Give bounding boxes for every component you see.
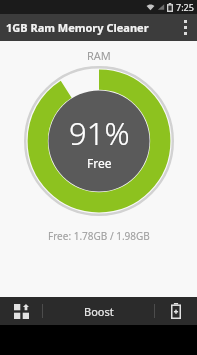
staticText: Free: 1.78GB / 1.98GB	[48, 229, 150, 243]
staticText: 7:25	[176, 1, 194, 13]
staticText: 1GB Ram Memory Cleaner	[6, 20, 149, 35]
staticText: RAM	[87, 48, 111, 63]
staticText: Boost	[84, 304, 114, 319]
staticText: 91%	[69, 112, 130, 154]
button[interactable]: Battery saver	[155, 297, 197, 325]
button[interactable]: Boost	[43, 297, 154, 325]
button[interactable]: App manager	[0, 297, 42, 325]
staticText: Free	[87, 155, 112, 171]
button[interactable]: More options	[173, 14, 197, 41]
